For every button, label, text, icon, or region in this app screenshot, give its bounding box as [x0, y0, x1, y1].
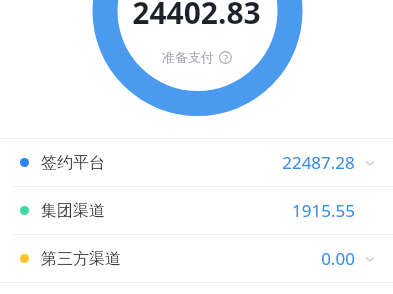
button[interactable]: 第三方渠道 [0, 235, 393, 282]
button[interactable]: 集团渠道 [0, 187, 393, 234]
other: Expand 第三方渠道 [363, 252, 377, 266]
button[interactable]: 签约平台 [0, 139, 393, 186]
staticText: 签约平台 [41, 153, 105, 173]
staticText: ? [224, 52, 228, 64]
staticText: 1915.55 [292, 199, 355, 222]
staticText: 第三方渠道 [41, 249, 121, 269]
staticText: 24402.83 [132, 0, 261, 33]
other: Expand 签约平台 [363, 156, 377, 170]
staticText: 22487.28 [282, 151, 355, 174]
other: Help about 准备支付 [219, 51, 232, 64]
staticText: 集团渠道 [41, 201, 105, 221]
button[interactable]: 准备支付 [158, 47, 236, 67]
staticText: 0.00 [321, 247, 355, 270]
staticText: 准备支付 [162, 49, 214, 65]
